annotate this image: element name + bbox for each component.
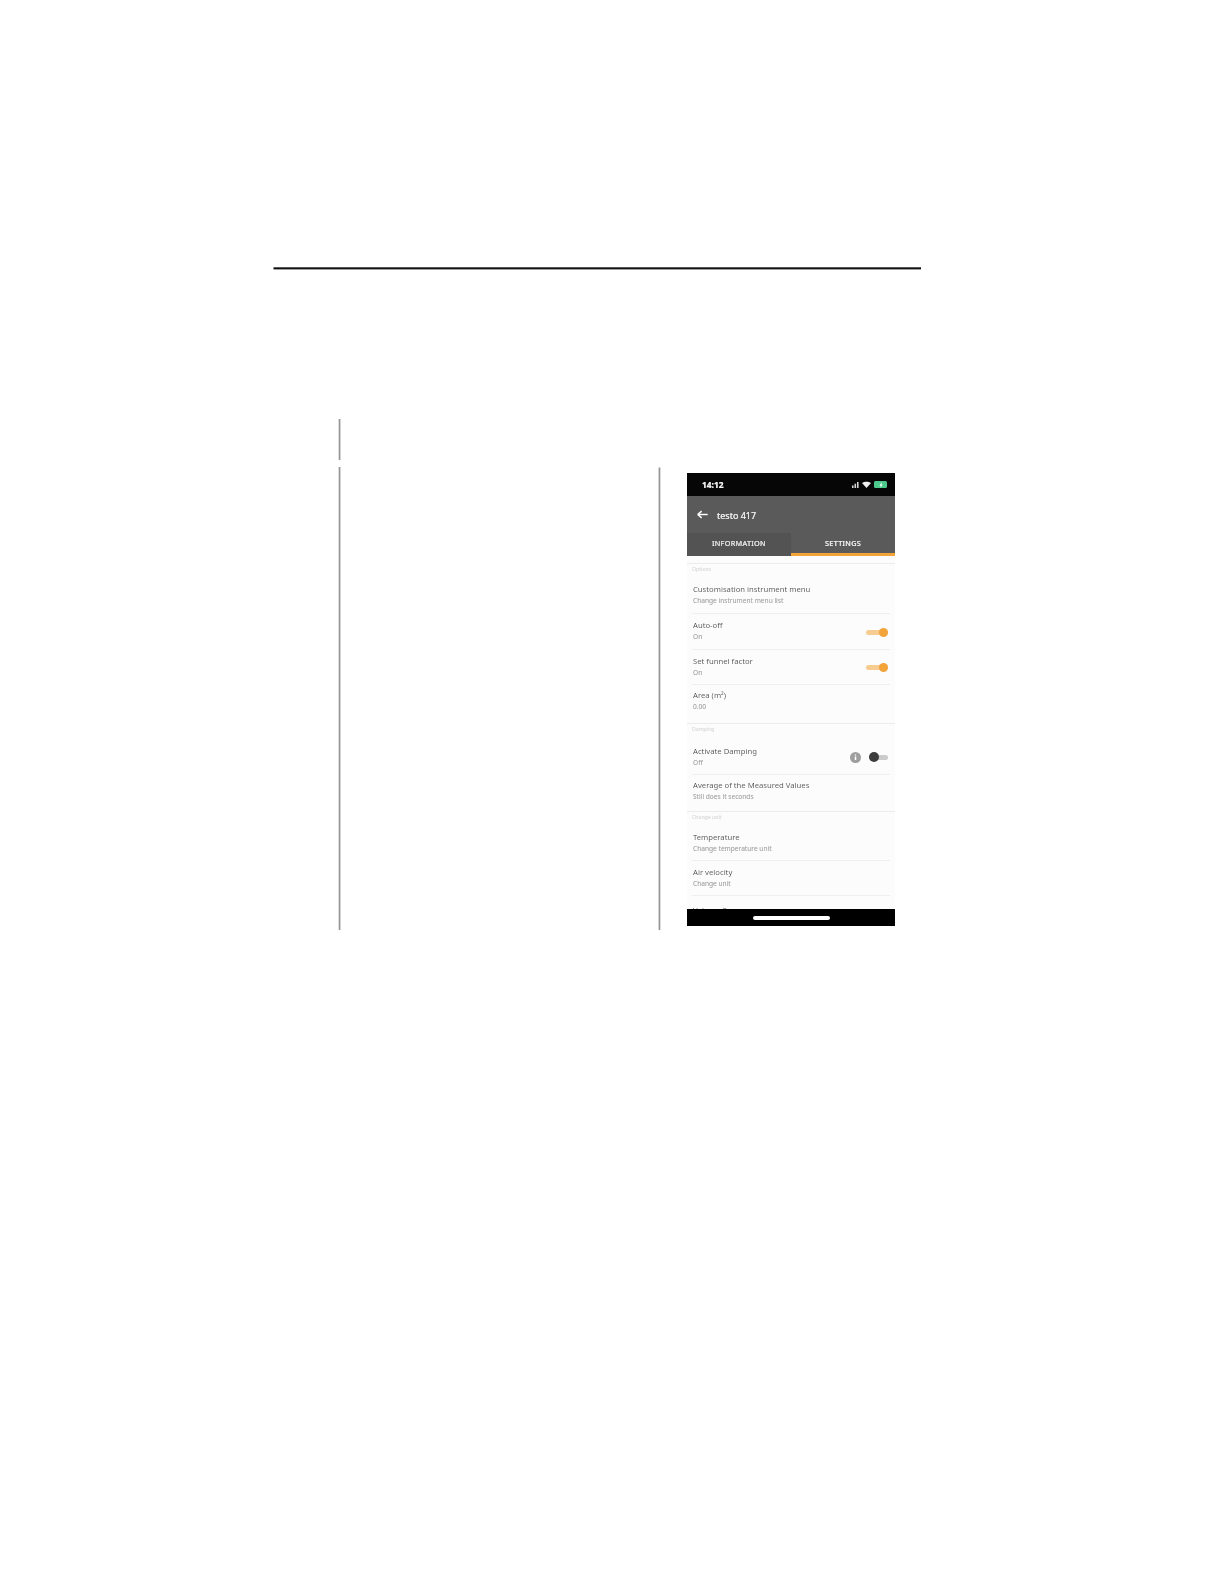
button[interactable]: SETTINGS: [791, 533, 895, 556]
staticText: Change unit: [692, 813, 722, 820]
staticText: INFORMATION: [712, 538, 766, 548]
staticText: Average of the Measured Values: [693, 780, 810, 790]
staticText: Air velocity: [693, 867, 733, 877]
button[interactable]: Activate Damping: [687, 740, 895, 774]
staticText: On: [693, 632, 703, 641]
button[interactable]: Customisation instrument menu: [687, 578, 895, 613]
staticText: Customisation instrument menu: [693, 584, 811, 594]
staticText: 14:12: [702, 479, 724, 490]
staticText: 0.00: [693, 702, 707, 711]
staticText: Change temperature unit: [693, 844, 772, 853]
button[interactable]: Toggle on: [866, 661, 888, 673]
button[interactable]: Toggle on: [866, 626, 888, 638]
staticText: Change instrument menu list: [693, 596, 784, 605]
staticText: testo 417: [717, 509, 757, 521]
staticText: Options: [692, 565, 712, 572]
button[interactable]: Set funnel factor: [687, 650, 895, 684]
button[interactable]: INFORMATION: [687, 533, 791, 556]
button[interactable]: Average of the Measured Values: [687, 775, 895, 808]
button[interactable]: Area (m²): [687, 685, 895, 718]
staticText: Change unit: [693, 879, 731, 888]
staticText: SETTINGS: [825, 538, 862, 548]
staticText: Volume flow: [693, 905, 738, 909]
staticText: On: [693, 668, 703, 677]
button[interactable]: Air velocity: [687, 861, 895, 895]
staticText: Off: [693, 758, 703, 767]
staticText: Area (m²): [693, 690, 727, 700]
button[interactable]: Volume flow: [687, 896, 895, 909]
staticText: Activate Damping: [693, 746, 757, 756]
staticText: Temperature: [693, 832, 740, 842]
button[interactable]: Back: [693, 505, 712, 524]
button[interactable]: Auto-off: [687, 614, 895, 649]
button[interactable]: Toggle off: [869, 751, 888, 763]
button[interactable]: Info: [850, 752, 861, 763]
staticText: Auto-off: [693, 620, 723, 630]
staticText: Damping: [692, 725, 715, 732]
staticText: Still does it seconds: [693, 792, 754, 801]
button[interactable]: Temperature: [687, 826, 895, 860]
staticText: Set funnel factor: [693, 656, 753, 666]
